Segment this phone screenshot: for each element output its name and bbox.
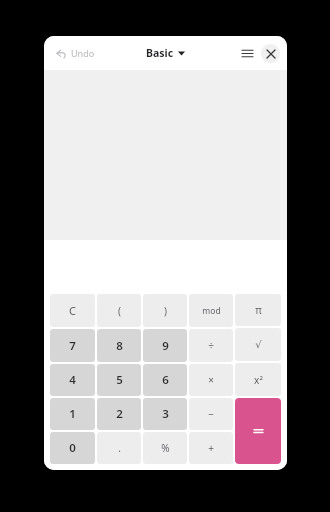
button[interactable]: Menu [237,43,257,63]
button[interactable] [235,398,281,464]
button[interactable]: × [189,364,233,396]
staticText: ÷ [208,339,214,353]
staticText: 0 [69,440,76,456]
button[interactable]: 9 [143,329,187,362]
button[interactable]: x² [235,363,281,396]
staticText: 2 [116,406,123,422]
staticText: 7 [69,338,76,354]
staticText: . [118,441,121,455]
button[interactable]: + [189,432,233,464]
staticText: C [69,303,76,318]
button[interactable]: Close [261,44,280,63]
staticText: ( [118,304,121,318]
staticText: mod [202,305,221,317]
staticText: 8 [116,338,123,354]
button[interactable]: √ [235,328,281,361]
staticText: × [208,373,214,387]
button[interactable]: mod [189,294,233,327]
button[interactable]: − [189,398,233,430]
staticText: 6 [162,372,169,388]
button[interactable]: 2 [97,398,141,430]
button[interactable]: Undo [53,43,98,63]
staticText: 1 [69,406,76,422]
staticText: − [208,407,214,421]
button[interactable]: 0 [50,432,95,464]
staticText: √ [255,339,262,351]
staticText: x² [254,373,263,387]
staticText: % [161,441,170,455]
button[interactable]: ( [97,294,141,327]
staticText: 9 [162,338,169,354]
button[interactable]: Basic [140,42,191,64]
button[interactable]: 5 [97,364,141,396]
staticText: 4 [69,372,76,388]
staticText: + [208,441,214,455]
button[interactable]: 4 [50,364,95,396]
button[interactable]: ) [143,294,187,327]
button[interactable]: 3 [143,398,187,430]
staticText: Basic [146,46,174,60]
button[interactable]: π [235,294,281,326]
staticText: π [255,303,262,317]
button[interactable]: 8 [97,329,141,362]
staticText: ) [164,304,167,318]
button[interactable]: ÷ [189,329,233,362]
staticText: Undo [71,47,95,59]
staticText: 5 [116,372,123,388]
staticText: 3 [162,406,169,422]
button[interactable]: 6 [143,364,187,396]
button[interactable]: . [97,432,141,464]
button[interactable]: % [143,432,187,464]
button[interactable]: 1 [50,398,95,430]
button[interactable]: 7 [50,329,95,362]
button[interactable]: C [50,294,95,327]
